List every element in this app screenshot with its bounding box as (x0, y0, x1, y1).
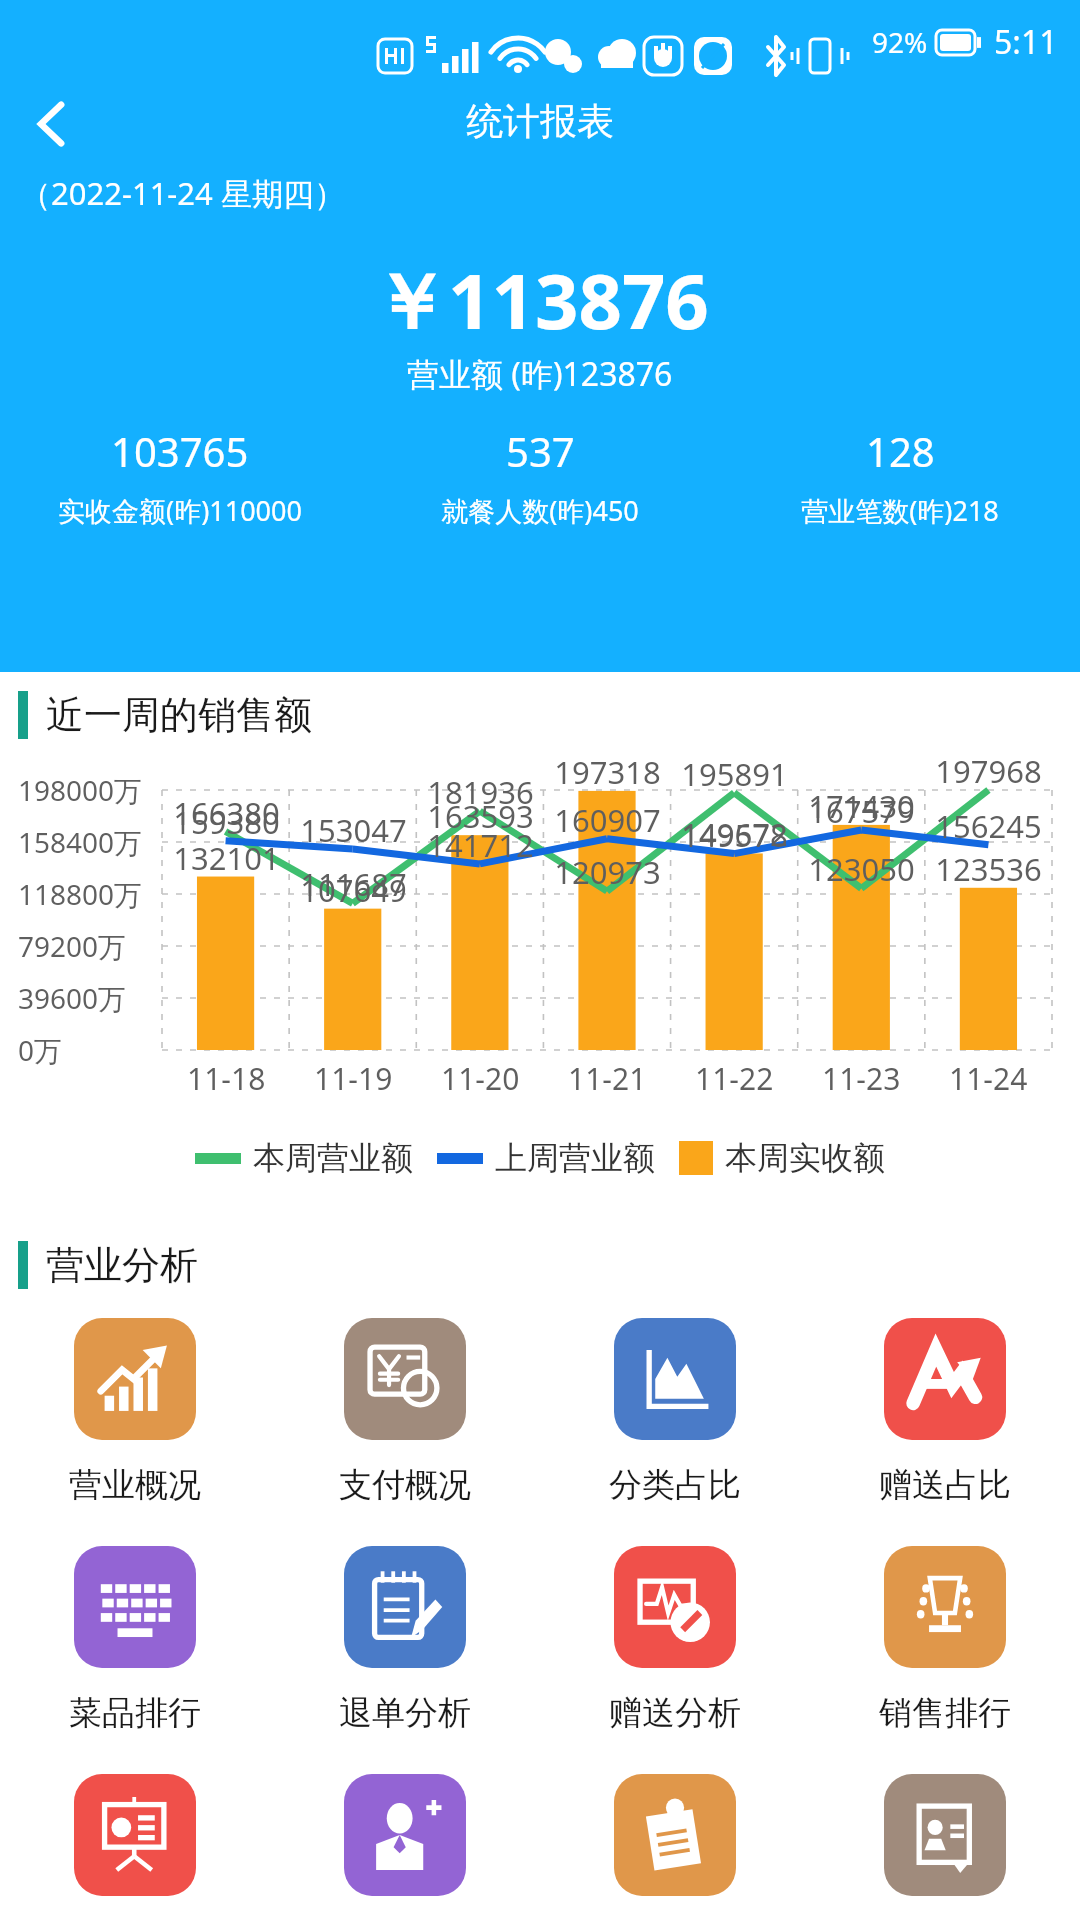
staticText: 181936 (427, 771, 534, 813)
staticText: 11-19 (314, 1058, 393, 1099)
staticText: 197968 (935, 750, 1042, 792)
staticText: 统计报表 (466, 98, 614, 145)
staticText: 支付概况 (339, 1464, 471, 1506)
staticText: 92% (872, 23, 928, 61)
button[interactable]: 本周实收额 (679, 1138, 885, 1178)
staticText: 营业概况 (69, 1464, 201, 1506)
staticText: 本周实收额 (725, 1138, 885, 1178)
staticText: 本周营业额 (253, 1138, 413, 1178)
staticText: 近一周的销售额 (46, 691, 312, 739)
staticText: 11-22 (695, 1058, 774, 1099)
staticText: 退单分析 (339, 1692, 471, 1734)
button[interactable]: 退单分析 (270, 1546, 540, 1734)
button[interactable]: 赠送占比 (810, 1318, 1080, 1506)
staticText: 149672 (681, 813, 788, 855)
staticText: 79200万 (18, 927, 127, 965)
staticText: 11-20 (441, 1058, 520, 1099)
button[interactable]: 上周营业额 (437, 1138, 655, 1178)
staticText: 11-21 (568, 1058, 647, 1099)
staticText: 5:11 (994, 20, 1058, 64)
button[interactable]: 分类占比 (540, 1318, 810, 1506)
button[interactable]: 128 (720, 424, 1080, 529)
staticText: 107649 (300, 869, 407, 911)
staticText: 123050 (808, 848, 915, 890)
staticText: 11-18 (187, 1058, 266, 1099)
staticText: 111687 (300, 863, 407, 905)
staticText: （2022-11-24 星期四） (20, 172, 345, 214)
staticText: 赠送分析 (609, 1692, 741, 1734)
staticText: 上周营业额 (495, 1138, 655, 1178)
staticText: 158400万 (18, 823, 143, 861)
staticText: 128 (866, 424, 935, 478)
staticText: 167579 (808, 790, 915, 832)
staticText: 103765 (111, 424, 249, 478)
staticText: 赠送占比 (879, 1464, 1011, 1506)
staticText: 营业笔数(昨)218 (801, 492, 999, 529)
staticText: 171430 (808, 785, 915, 827)
button[interactable]: 537 (360, 424, 720, 529)
button[interactable]: board (0, 1774, 270, 1896)
staticText: 195891 (681, 753, 788, 795)
staticText: 123536 (935, 848, 1042, 890)
button[interactable]: personadd (270, 1774, 540, 1896)
button[interactable]: 支付概况 (270, 1318, 540, 1506)
button[interactable]: Back (12, 84, 92, 164)
staticText: 菜品排行 (69, 1692, 201, 1734)
staticText: 营业额 (昨)123876 (407, 352, 673, 396)
staticText: 实收金额(昨)110000 (58, 492, 302, 529)
button[interactable]: idcard (810, 1774, 1080, 1896)
staticText: 0万 (18, 1031, 63, 1069)
staticText: 分类占比 (609, 1464, 741, 1506)
button[interactable]: 赠送分析 (540, 1546, 810, 1734)
staticText: 198000万 (18, 771, 143, 809)
button[interactable]: 菜品排行 (0, 1546, 270, 1734)
button[interactable]: clipboard (540, 1774, 810, 1896)
staticText: 132101 (173, 837, 280, 879)
staticText: 156245 (935, 805, 1042, 847)
staticText: 就餐人数(昨)450 (441, 492, 639, 529)
staticText: 166380 (173, 792, 280, 834)
staticText: 159380 (173, 801, 280, 843)
staticText: 118800万 (18, 875, 143, 913)
staticText: 197318 (554, 751, 661, 793)
staticText: 销售排行 (879, 1692, 1011, 1734)
button[interactable]: 营业概况 (0, 1318, 270, 1506)
staticText: 163593 (427, 795, 534, 837)
staticText: 141712 (427, 824, 534, 866)
button[interactable]: 本周营业额 (195, 1138, 413, 1178)
staticText: 153047 (300, 809, 407, 851)
staticText: 39600万 (18, 979, 127, 1017)
button[interactable]: 103765 (0, 424, 360, 529)
staticText: 120973 (554, 851, 661, 893)
staticText: 160907 (554, 799, 661, 841)
staticText: 537 (506, 424, 575, 478)
staticText: 营业分析 (46, 1241, 198, 1289)
staticText: 11-24 (949, 1058, 1028, 1099)
staticText: 149578 (681, 814, 788, 856)
staticText: ￥113876 (372, 248, 709, 352)
staticText: 11-23 (822, 1058, 901, 1099)
button[interactable]: 销售排行 (810, 1546, 1080, 1734)
